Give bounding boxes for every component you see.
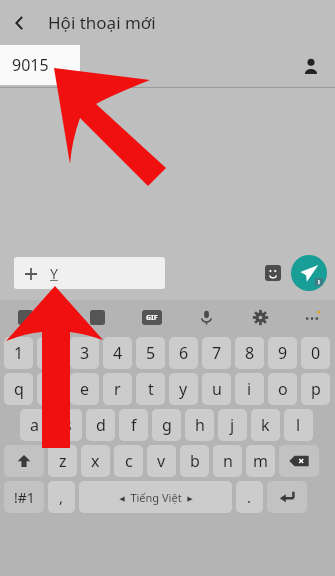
button[interactable] <box>4 445 44 477</box>
button[interactable]: Y <box>14 257 165 289</box>
staticText: 4 <box>113 342 123 364</box>
staticText: c <box>125 450 133 472</box>
button[interactable]: 5 <box>136 337 165 369</box>
staticText: Y <box>50 264 58 283</box>
staticText: 5 <box>146 342 156 364</box>
button[interactable]: 1 <box>4 337 33 369</box>
button[interactable]: Stickers <box>259 259 287 287</box>
button[interactable]: w <box>37 373 66 405</box>
button[interactable]: 9015 <box>0 45 80 85</box>
button[interactable]: z <box>48 445 77 477</box>
staticText: e <box>80 378 90 400</box>
button[interactable]: 7 <box>202 337 231 369</box>
button[interactable]: Voice input <box>183 300 229 334</box>
button[interactable]: GIF <box>129 300 175 334</box>
button[interactable]: Settings <box>237 300 283 334</box>
staticText: !#1 <box>14 488 35 507</box>
staticText: 6 <box>179 342 189 364</box>
button[interactable]: m <box>246 445 275 477</box>
button[interactable]: 0 <box>301 337 330 369</box>
staticText: 1 <box>14 342 24 364</box>
staticText: g <box>162 414 172 436</box>
button[interactable]: b <box>180 445 209 477</box>
staticText: . <box>247 487 252 507</box>
staticText: j <box>230 414 235 436</box>
button[interactable]: y <box>169 373 198 405</box>
button[interactable] <box>267 481 307 513</box>
staticText: n <box>223 450 233 472</box>
button[interactable]: k <box>251 409 280 441</box>
button[interactable]: ◂ Tiếng Việt ▸ <box>79 481 232 513</box>
button[interactable]: g <box>152 409 181 441</box>
button[interactable]: , <box>48 481 75 513</box>
staticText: , <box>59 487 64 507</box>
button[interactable]: !#1 <box>4 481 44 513</box>
staticText: h <box>195 414 205 436</box>
staticText: b <box>190 450 200 472</box>
button[interactable]: q <box>4 373 33 405</box>
button[interactable]: x <box>81 445 110 477</box>
staticText: f <box>131 414 137 436</box>
staticText: GIF <box>146 313 158 323</box>
staticText: 3 <box>80 342 90 364</box>
button[interactable]: . <box>236 481 263 513</box>
staticText: a <box>30 414 39 436</box>
button[interactable]: p <box>301 373 330 405</box>
button[interactable]: u <box>202 373 231 405</box>
staticText: i <box>247 378 252 400</box>
staticText: r <box>114 378 121 400</box>
button[interactable]: Add recipient <box>295 50 327 82</box>
button[interactable]: f <box>119 409 148 441</box>
staticText: k <box>261 414 270 436</box>
staticText: p <box>311 378 321 400</box>
staticText: s <box>64 414 72 436</box>
staticText: l <box>296 414 301 436</box>
staticText: v <box>157 450 166 472</box>
staticText: ◂ Tiếng Việt ▸ <box>119 490 193 505</box>
staticText: d <box>96 414 106 436</box>
staticText: u <box>212 378 222 400</box>
button[interactable]: c <box>114 445 143 477</box>
button[interactable]: h <box>185 409 214 441</box>
button[interactable]: n <box>213 445 242 477</box>
button[interactable]: 6 <box>169 337 198 369</box>
staticText: m <box>253 450 268 472</box>
button[interactable]: 8 <box>235 337 264 369</box>
button[interactable]: Back <box>0 3 40 43</box>
button[interactable]: 4 <box>103 337 132 369</box>
button[interactable]: r <box>103 373 132 405</box>
button[interactable]: l <box>284 409 313 441</box>
staticText: z <box>59 450 67 472</box>
button[interactable]: Stickers <box>72 300 122 334</box>
button[interactable]: s <box>53 409 82 441</box>
staticText: 9015 <box>12 54 49 76</box>
button[interactable]: j <box>218 409 247 441</box>
button[interactable]: 9 <box>268 337 297 369</box>
staticText: 9 <box>278 342 288 364</box>
button[interactable]: i <box>235 373 264 405</box>
button[interactable]: 3 <box>70 337 99 369</box>
button[interactable]: Emoji <box>0 300 50 334</box>
button[interactable]: e <box>70 373 99 405</box>
staticText: 8 <box>245 342 255 364</box>
staticText: x <box>91 450 100 472</box>
button[interactable]: v <box>147 445 176 477</box>
staticText: 0 <box>311 342 321 364</box>
button[interactable]: d <box>86 409 115 441</box>
button[interactable]: More options <box>291 300 333 334</box>
button[interactable]: o <box>268 373 297 405</box>
staticText: 7 <box>212 342 222 364</box>
staticText: Hội thoại mới <box>48 11 156 34</box>
button[interactable]: t <box>136 373 165 405</box>
button[interactable]: 2 <box>37 337 66 369</box>
staticText: o <box>278 378 288 400</box>
staticText: t <box>148 378 154 400</box>
staticText: q <box>14 378 24 400</box>
staticText: y <box>179 378 188 400</box>
button[interactable] <box>279 445 319 477</box>
button[interactable]: a <box>20 409 49 441</box>
button[interactable]: Send <box>291 255 327 291</box>
